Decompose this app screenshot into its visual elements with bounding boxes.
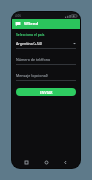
- staticText: Número de teléfono: [16, 57, 51, 62]
- staticText: Mensaje (opcional): [16, 73, 48, 78]
- button[interactable]: Número de teléfono: [16, 57, 76, 65]
- button[interactable]: Home: [42, 158, 51, 167]
- staticText: 4:06: [15, 14, 21, 18]
- button[interactable]: Back: [61, 158, 70, 167]
- staticText: WSend: [24, 21, 39, 27]
- button[interactable]: Mensaje (opcional): [16, 73, 76, 81]
- button[interactable]: ENVIAR: [16, 88, 76, 96]
- button[interactable]: Recents: [22, 158, 31, 167]
- staticText: Selecciona el país: [16, 32, 45, 37]
- staticText: Argentina (+54): [16, 41, 42, 46]
- button[interactable]: Argentina (+54): [16, 41, 76, 49]
- button[interactable]: App icon: [15, 21, 21, 27]
- staticText: ENVIAR: [40, 90, 53, 94]
